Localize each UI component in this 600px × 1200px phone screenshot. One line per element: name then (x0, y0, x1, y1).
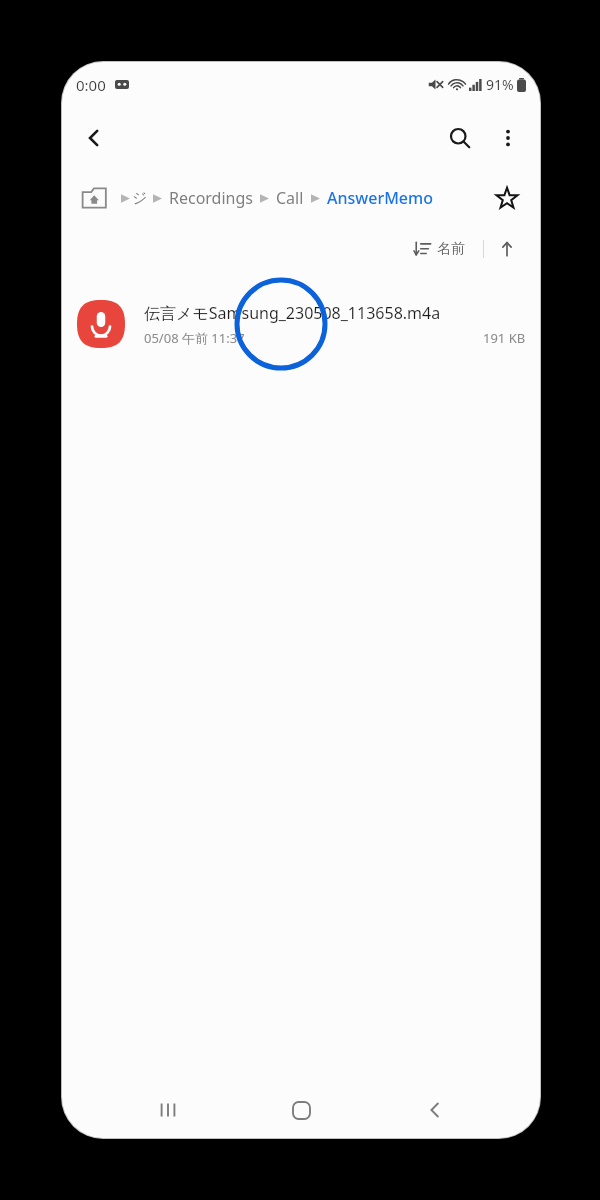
staticText: Call (276, 187, 304, 209)
staticText: AnswerMemo (327, 187, 433, 209)
staticText: 91% (486, 75, 514, 94)
button[interactable]: Home (273, 1082, 329, 1138)
staticText: 伝言メモSamsung_230508_113658.m4a (144, 302, 441, 324)
staticText: Recordings (169, 187, 253, 209)
button[interactable]: 名前 (408, 236, 471, 262)
button[interactable]: Home folder (76, 180, 112, 216)
button[interactable]: More options (484, 114, 532, 162)
button[interactable]: 伝言メモSamsung_230508_113658.m4a (62, 283, 540, 365)
staticText: 0:00 (76, 75, 106, 95)
staticText: 05/08 午前 11:37 (144, 329, 245, 347)
button[interactable]: Recordings (169, 187, 253, 209)
staticText: 名前 (437, 240, 465, 258)
button[interactable]: Back (407, 1082, 463, 1138)
staticText: ジ (132, 189, 148, 208)
button[interactable]: Call (276, 187, 304, 209)
staticText: 191 KB (483, 329, 526, 347)
button[interactable]: Sort ascending (490, 232, 524, 266)
button[interactable]: Search (436, 114, 484, 162)
button[interactable]: Back (70, 114, 118, 162)
button[interactable]: Add to favourites (488, 179, 526, 217)
button[interactable]: AnswerMemo (327, 187, 433, 209)
button[interactable]: Recent apps (140, 1082, 196, 1138)
